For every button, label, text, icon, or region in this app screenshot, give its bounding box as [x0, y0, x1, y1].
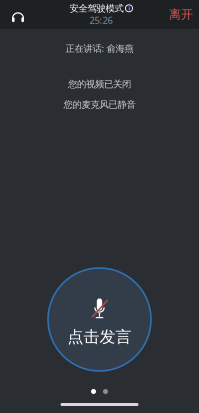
button[interactable]: 离开 [166, 0, 199, 29]
staticText: 您的麦克风已静音 [63, 99, 135, 110]
staticText: 点击发言 [67, 327, 131, 347]
staticText: 正在讲话: 俞海燕 [65, 42, 133, 54]
button[interactable]: Audio [0, 0, 36, 29]
button[interactable]: 点击发言 [48, 268, 151, 371]
staticText: 安全驾驶模式 [69, 3, 123, 14]
staticText: 您的视频已关闭 [68, 78, 131, 90]
staticText: 离开 [169, 7, 193, 22]
staticText: i [128, 5, 129, 12]
staticText: 25:26 [89, 14, 112, 26]
